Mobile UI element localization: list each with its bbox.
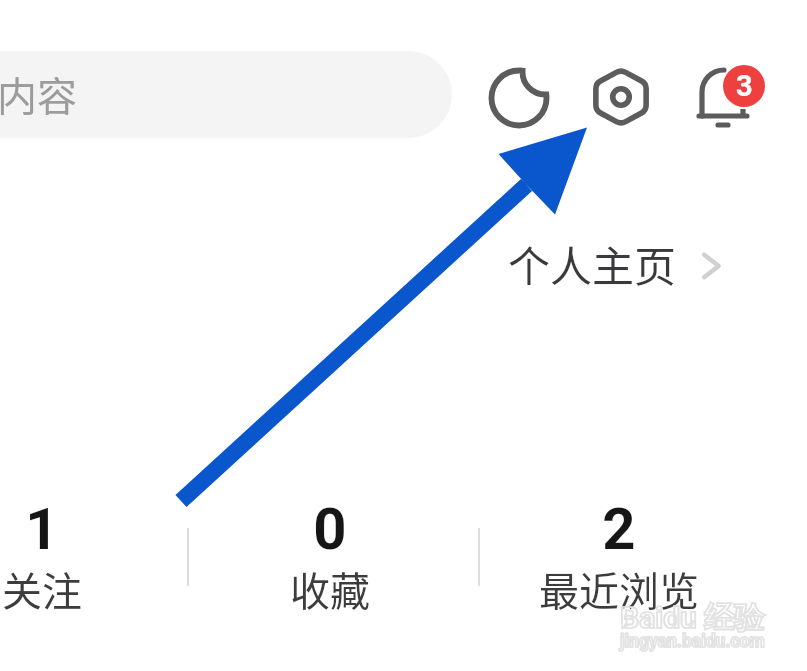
staticText: 0 (220, 495, 440, 563)
button[interactable]: 0 (220, 495, 440, 620)
staticText: 关注 (0, 560, 152, 618)
staticText: jingyan.baidu.com (620, 631, 765, 652)
button[interactable]: 内容 (0, 51, 452, 138)
staticText: 收藏 (220, 560, 440, 618)
staticText: 3 (736, 69, 753, 103)
staticText: 1 (0, 495, 152, 563)
staticText: 内容 (0, 65, 77, 123)
staticText: 2 (509, 495, 729, 563)
staticText: 个人主页 (508, 233, 677, 294)
button[interactable]: Cookie (484, 63, 554, 133)
staticText: Baidu 经验 (620, 599, 765, 637)
button[interactable]: 1 (0, 495, 152, 620)
button[interactable]: Notifications (690, 60, 774, 144)
button[interactable]: Settings (586, 62, 656, 132)
staticText: 最近浏览 (509, 560, 729, 618)
button[interactable]: 2 (509, 495, 729, 620)
button[interactable]: 个人主页 (508, 233, 720, 294)
